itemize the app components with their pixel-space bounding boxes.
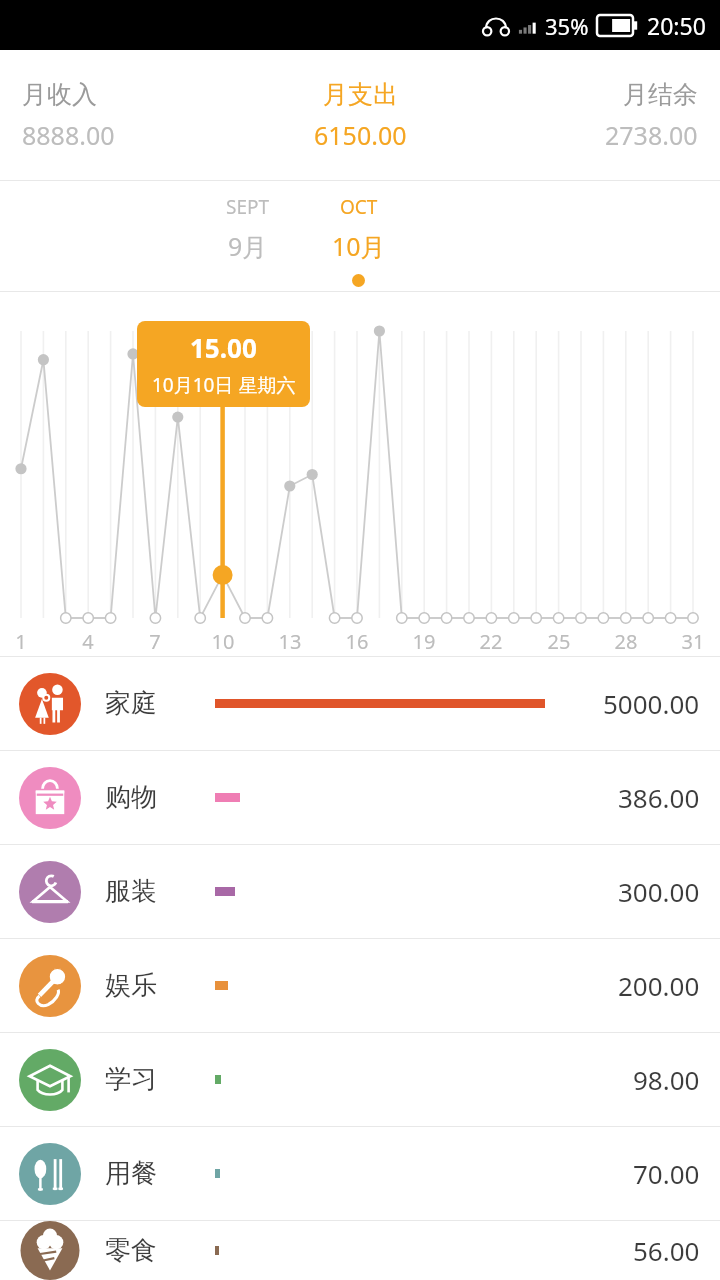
- staticText: 5000.00: [603, 686, 700, 721]
- staticText: 8888.00: [22, 118, 115, 152]
- staticText: 7: [135, 628, 175, 655]
- staticText: 25: [539, 628, 579, 655]
- staticText: 月支出: [323, 79, 398, 110]
- staticText: 用餐: [105, 1157, 215, 1190]
- staticText: 22: [471, 628, 511, 655]
- staticText: 娱乐: [105, 969, 215, 1002]
- staticText: 10月10日 星期六: [152, 372, 296, 398]
- staticText: 13: [270, 628, 310, 655]
- staticText: 200.00: [618, 968, 700, 1003]
- staticText: 家庭: [105, 687, 215, 720]
- staticText: 学习: [105, 1063, 215, 1096]
- staticText: 28: [606, 628, 646, 655]
- staticText: OCT: [340, 194, 378, 220]
- staticText: 10: [203, 628, 243, 655]
- staticText: 9月: [228, 229, 268, 263]
- staticText: SEPT: [226, 194, 270, 220]
- staticText: 1: [1, 628, 41, 655]
- button[interactable]: 学习: [0, 1033, 720, 1126]
- staticText: 4: [68, 628, 108, 655]
- button[interactable]: 零食: [0, 1221, 720, 1280]
- staticText: 300.00: [618, 874, 700, 909]
- staticText: 服装: [105, 875, 215, 908]
- staticText: 购物: [105, 781, 215, 814]
- staticText: 月结余: [623, 79, 698, 110]
- staticText: 20:50: [647, 10, 706, 41]
- button[interactable]: 15.00: [137, 321, 310, 407]
- staticText: 98.00: [633, 1062, 700, 1097]
- button[interactable]: 购物: [0, 751, 720, 844]
- staticText: 零食: [105, 1234, 215, 1267]
- staticText: 15.00: [190, 330, 257, 365]
- button[interactable]: OCT: [314, 194, 404, 263]
- staticText: 35%: [545, 11, 589, 41]
- staticText: 19: [404, 628, 444, 655]
- staticText: 31: [673, 628, 713, 655]
- staticText: 16: [337, 628, 377, 655]
- button[interactable]: SEPT: [203, 194, 293, 263]
- staticText: 2738.00: [605, 118, 698, 152]
- button[interactable]: 用餐: [0, 1127, 720, 1220]
- button[interactable]: 服装: [0, 845, 720, 938]
- staticText: 386.00: [618, 780, 700, 815]
- staticText: 56.00: [633, 1233, 700, 1268]
- staticText: 10月: [332, 229, 386, 263]
- button[interactable]: 娱乐: [0, 939, 720, 1032]
- staticText: 月收入: [22, 79, 97, 110]
- staticText: 70.00: [633, 1156, 700, 1191]
- button[interactable]: 家庭: [0, 657, 720, 750]
- staticText: 6150.00: [314, 118, 407, 152]
